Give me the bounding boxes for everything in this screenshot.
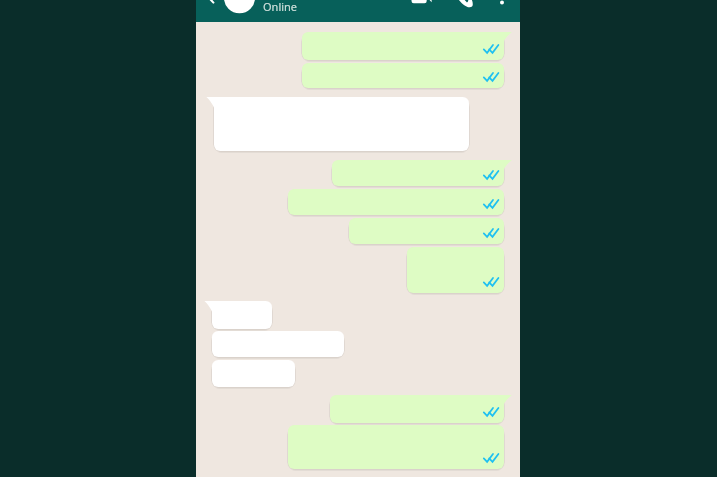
- button[interactable]: [349, 218, 504, 244]
- button[interactable]: [212, 360, 295, 387]
- button[interactable]: [212, 301, 272, 329]
- button[interactable]: [332, 160, 504, 186]
- button[interactable]: Contact profile: [222, 0, 366, 22]
- button[interactable]: [302, 63, 504, 88]
- button[interactable]: [330, 395, 504, 423]
- button[interactable]: [212, 331, 344, 357]
- button[interactable]: [288, 425, 504, 469]
- button[interactable]: [302, 32, 504, 60]
- button[interactable]: More options: [488, 0, 516, 22]
- button[interactable]: [288, 189, 504, 215]
- button[interactable]: [407, 247, 504, 293]
- button[interactable]: Voice call: [448, 0, 482, 22]
- button[interactable]: Back: [204, 0, 240, 22]
- staticText: Online: [263, 0, 298, 14]
- button[interactable]: Video call: [404, 0, 438, 22]
